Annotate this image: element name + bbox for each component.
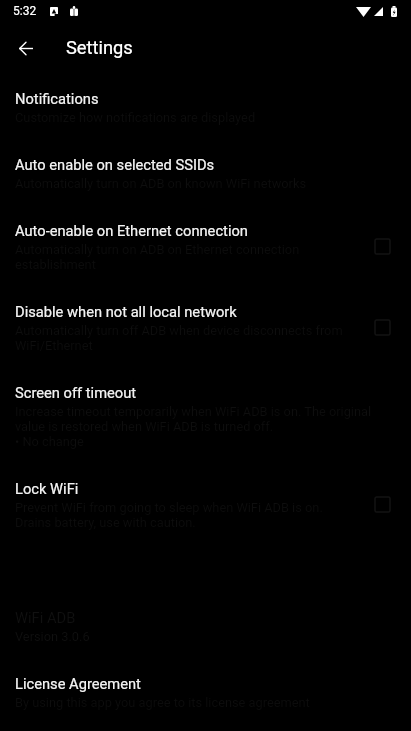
button[interactable]: Lock WiFi bbox=[0, 480, 411, 530]
staticText: Customize how notifications are displaye… bbox=[15, 110, 256, 125]
button[interactable]: Auto-enable on Ethernet connection bbox=[0, 222, 411, 272]
staticText: By using this app you agree to its licen… bbox=[15, 695, 310, 710]
button[interactable]: Disable when not all local network bbox=[0, 303, 411, 353]
button[interactable]: Toggle Disable when not all local networ… bbox=[375, 320, 390, 335]
staticText: Auto enable on selected SSIDs bbox=[15, 156, 215, 173]
staticText: Version 3.0.6 bbox=[15, 629, 90, 644]
button[interactable]: Back bbox=[4, 26, 48, 70]
staticText: Prevent WiFi from going to sleep when Wi… bbox=[15, 500, 359, 530]
button[interactable]: Notifications bbox=[0, 90, 411, 125]
staticText: 5:32 bbox=[13, 4, 37, 18]
staticText: Notifications bbox=[15, 90, 99, 107]
button[interactable]: Toggle Auto-enable on Ethernet connectio… bbox=[375, 239, 390, 254]
button[interactable]: Toggle Lock WiFi bbox=[375, 497, 390, 512]
staticText: Auto-enable on Ethernet connection bbox=[15, 222, 248, 239]
button[interactable]: Auto enable on selected SSIDs bbox=[0, 156, 411, 191]
staticText: WiFi ADB bbox=[15, 609, 76, 626]
staticText: Screen off timeout bbox=[15, 384, 137, 401]
staticText: Automatically turn on ADB on known WiFi … bbox=[15, 176, 306, 191]
staticText: Settings bbox=[66, 37, 133, 58]
button[interactable]: Screen off timeout bbox=[0, 384, 411, 449]
staticText: Disable when not all local network bbox=[15, 303, 237, 320]
staticText: Lock WiFi bbox=[15, 480, 79, 497]
button[interactable]: License Agreement bbox=[0, 675, 411, 710]
staticText: License Agreement bbox=[15, 675, 141, 692]
